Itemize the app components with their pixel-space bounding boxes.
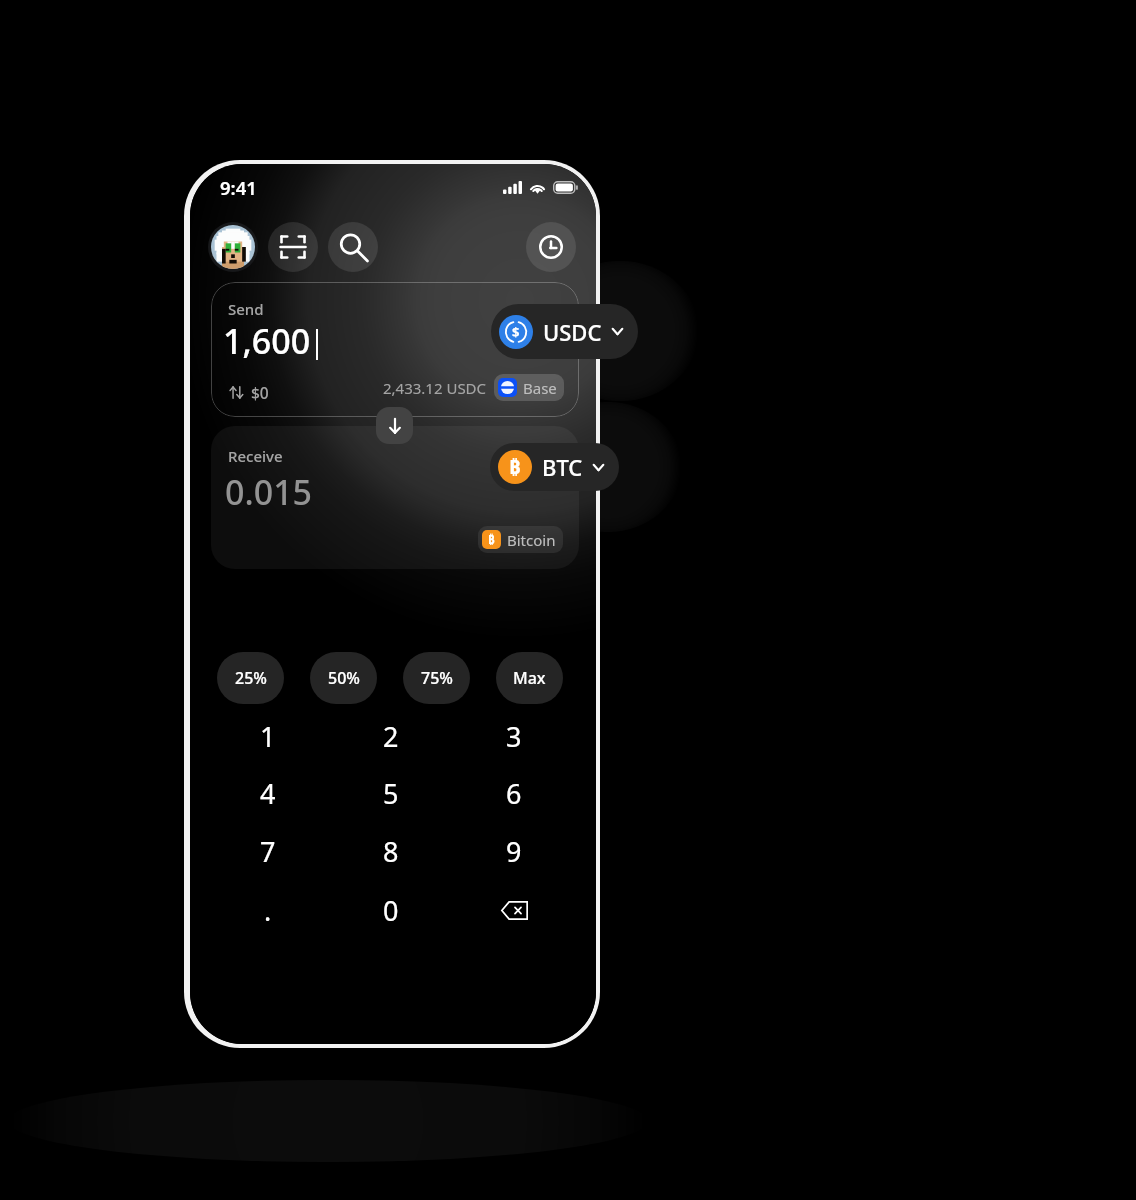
button[interactable]: History (526, 222, 576, 272)
staticText: BTC (542, 452, 583, 482)
staticText: 9 (506, 833, 522, 870)
staticText: 1 (260, 718, 276, 755)
staticText: 75% (421, 667, 453, 689)
staticText: Max (513, 667, 546, 689)
staticText: ₿ (509, 453, 521, 480)
button[interactable]: ₿ (490, 443, 619, 491)
button[interactable]: $ (491, 304, 638, 359)
staticText: 4 (260, 775, 276, 812)
staticText: Send (228, 299, 264, 319)
staticText: 50% (328, 667, 360, 689)
button[interactable]: 1 (210, 707, 326, 765)
button[interactable]: Delete (456, 881, 572, 939)
staticText: 5 (383, 775, 399, 812)
staticText: 2 (383, 718, 399, 755)
button[interactable]: Scan (268, 222, 318, 272)
staticText: USDC (543, 317, 602, 347)
button[interactable]: 3 (456, 707, 572, 765)
button[interactable]: Send (211, 282, 579, 417)
staticText: 7 (260, 833, 276, 870)
button[interactable]: 8 (333, 822, 449, 880)
staticText: 0 (383, 892, 399, 929)
button[interactable]: 25% (217, 652, 284, 704)
button[interactable]: 9 (456, 822, 572, 880)
button[interactable]: 6 (456, 764, 572, 822)
button[interactable]: Receive (211, 426, 579, 569)
staticText: . (264, 892, 272, 929)
staticText: 0.015 (225, 469, 313, 515)
button[interactable]: 4 (210, 764, 326, 822)
staticText: 6 (506, 775, 522, 812)
button[interactable]: 5 (333, 764, 449, 822)
button[interactable]: Search (328, 222, 378, 272)
staticText: 8 (383, 833, 399, 870)
staticText: $0 (251, 382, 269, 403)
staticText: Receive (228, 446, 283, 466)
staticText: 9:41 (220, 175, 257, 200)
button[interactable]: Profile (208, 222, 258, 272)
button[interactable]: Swap direction (376, 407, 413, 444)
staticText: Bitcoin (507, 530, 556, 550)
staticText: 3 (506, 718, 522, 755)
staticText: 1,600 (223, 318, 311, 364)
staticText: 2,433.12 USDC (383, 378, 487, 398)
button[interactable]: 0 (333, 881, 449, 939)
button[interactable]: 75% (403, 652, 470, 704)
staticText: $ (512, 323, 520, 341)
staticText: Base (523, 378, 557, 398)
button[interactable]: . (210, 881, 326, 939)
staticText: 25% (235, 667, 267, 689)
button[interactable]: Max (496, 652, 563, 704)
staticText: ₿ (488, 532, 495, 548)
button[interactable]: 7 (210, 822, 326, 880)
button[interactable]: 2 (333, 707, 449, 765)
button[interactable]: 50% (310, 652, 377, 704)
